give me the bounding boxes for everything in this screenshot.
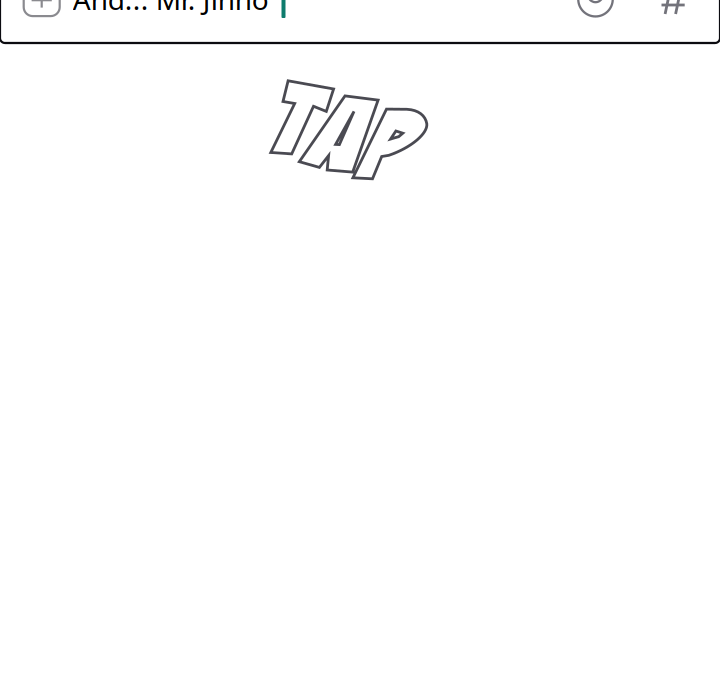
button[interactable]: Add attachment	[24, 0, 60, 16]
button[interactable]: Emoji	[577, 0, 613, 18]
staticText: And... Mr. Jinho	[73, 0, 269, 18]
button[interactable]: Hashtag	[660, 0, 690, 15]
